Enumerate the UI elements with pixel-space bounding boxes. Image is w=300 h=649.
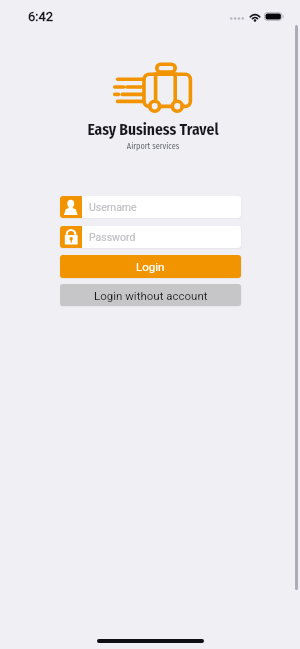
- button[interactable]: Password: [60, 226, 241, 248]
- staticText: Username: [89, 201, 137, 213]
- button[interactable]: User name: [60, 196, 241, 218]
- button[interactable]: Login without account: [60, 284, 241, 306]
- staticText: Airport services: [3, 141, 300, 151]
- staticText: Easy Business Travel: [3, 121, 300, 140]
- other: Battery: [264, 12, 284, 21]
- staticText: Password: [89, 231, 136, 243]
- staticText: Login: [136, 260, 165, 273]
- staticText: 6:42: [28, 9, 54, 24]
- other: User name: [60, 196, 82, 218]
- staticText: Login without account: [94, 289, 208, 302]
- other: Wi-Fi: [249, 12, 261, 21]
- other: Password: [60, 226, 82, 248]
- button[interactable]: Login: [60, 255, 241, 278]
